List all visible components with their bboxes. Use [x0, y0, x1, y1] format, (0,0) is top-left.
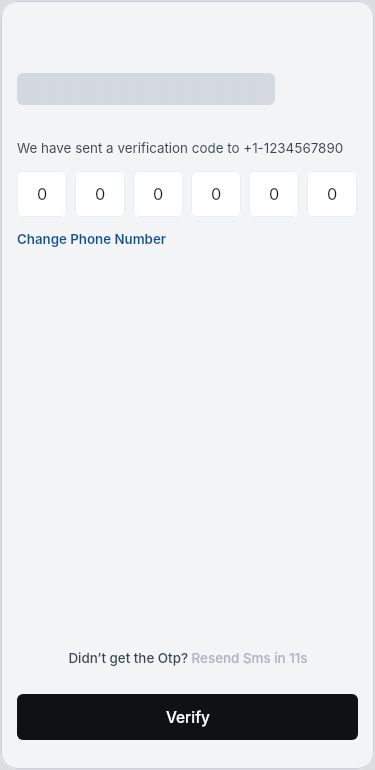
staticText: We have sent a verification code to +1-1…: [17, 140, 344, 156]
button[interactable]: OTP digit 3: [133, 171, 183, 217]
staticText: 0: [211, 184, 222, 204]
button[interactable]: Verify: [17, 694, 358, 740]
staticText: 0: [327, 184, 338, 204]
button[interactable]: Change Phone Number: [17, 231, 167, 247]
staticText: Didn’t get the Otp? Resend Sms in 11s: [68, 650, 308, 666]
staticText: 0: [95, 184, 106, 204]
staticText: Verify: [166, 708, 210, 727]
staticText: 0: [37, 184, 48, 204]
staticText: 0: [269, 184, 280, 204]
button[interactable]: OTP digit 6: [307, 171, 357, 217]
button[interactable]: OTP digit 4: [191, 171, 241, 217]
button[interactable]: OTP digit 2: [75, 171, 125, 217]
button[interactable]: OTP digit 5: [249, 171, 299, 217]
staticText: Change Phone Number: [17, 231, 167, 247]
button[interactable]: OTP digit 1: [17, 171, 67, 217]
staticText: 0: [153, 184, 164, 204]
